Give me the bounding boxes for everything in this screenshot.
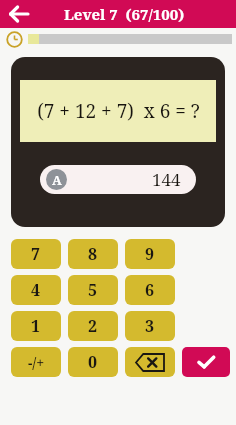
button[interactable]: 9 <box>125 239 175 269</box>
button[interactable]: 8 <box>68 239 118 269</box>
staticText: 7 <box>31 243 41 265</box>
button[interactable]: 7 <box>11 239 61 269</box>
staticText: 5 <box>88 279 98 301</box>
staticText: 4 <box>31 279 41 301</box>
button[interactable]: A <box>40 165 196 194</box>
staticText: 3 <box>145 315 155 337</box>
staticText: 1 <box>31 315 41 337</box>
button[interactable]: 6 <box>125 275 175 305</box>
staticText: 0 <box>88 351 98 373</box>
staticText: -/+ <box>28 353 45 372</box>
staticText: 144 <box>152 168 181 191</box>
button[interactable]: -/+ <box>11 347 61 377</box>
button[interactable]: Backspace <box>125 347 175 377</box>
staticText: 2 <box>88 315 98 337</box>
button[interactable]: Submit answer <box>182 347 230 377</box>
staticText: Level 7 (67/100) <box>64 4 185 24</box>
button[interactable]: 4 <box>11 275 61 305</box>
button[interactable]: (7 + 12 + 7) x 6 = ? <box>20 80 216 142</box>
button[interactable]: 0 <box>68 347 118 377</box>
button[interactable]: 1 <box>11 311 61 341</box>
button[interactable]: 5 <box>68 275 118 305</box>
staticText: A <box>52 171 62 189</box>
button[interactable]: Back <box>4 0 34 28</box>
button[interactable]: 3 <box>125 311 175 341</box>
staticText: 6 <box>145 279 155 301</box>
staticText: 8 <box>88 243 98 265</box>
staticText: (7 + 12 + 7) x 6 = ? <box>37 98 200 124</box>
button[interactable]: 2 <box>68 311 118 341</box>
staticText: 9 <box>145 243 155 265</box>
